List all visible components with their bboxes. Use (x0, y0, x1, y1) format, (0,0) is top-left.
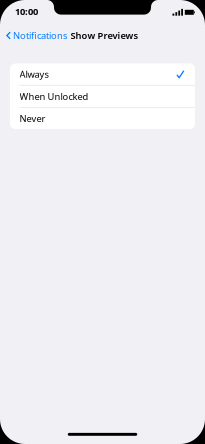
staticText: 10:00 (15, 5, 38, 18)
staticText: Always (19, 68, 48, 80)
button[interactable]: Notifications (1, 25, 72, 46)
staticText: Notifications (13, 29, 67, 42)
button[interactable]: Always (10, 63, 195, 85)
staticText: Never (19, 112, 45, 125)
button[interactable]: When Unlocked (10, 86, 195, 107)
button[interactable]: Never (10, 108, 195, 129)
staticText: Show Previews (70, 29, 138, 42)
staticText: When Unlocked (19, 90, 88, 102)
